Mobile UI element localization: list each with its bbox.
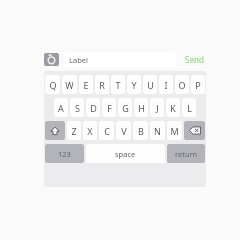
staticText: V — [121, 125, 127, 137]
staticText: W — [65, 79, 74, 91]
staticText: Q — [49, 79, 57, 91]
button[interactable]: Send — [182, 52, 206, 67]
staticText: 123 — [58, 149, 71, 159]
staticText: J — [156, 102, 159, 114]
button[interactable]: B — [133, 121, 148, 140]
button[interactable]: J — [150, 98, 164, 117]
button[interactable]: Label — [64, 52, 176, 67]
staticText: G — [122, 102, 129, 114]
button[interactable]: Q — [45, 75, 60, 94]
button[interactable]: F — [102, 98, 116, 117]
button[interactable]: M — [167, 121, 182, 140]
button[interactable]: A — [54, 98, 68, 117]
staticText: F — [107, 102, 112, 114]
button[interactable]: L — [182, 98, 196, 117]
staticText: N — [154, 125, 161, 137]
staticText: T — [115, 79, 121, 91]
button[interactable]: K — [166, 98, 180, 117]
button[interactable]: R — [95, 75, 109, 94]
button[interactable]: space — [86, 144, 165, 163]
staticText: Y — [131, 79, 137, 91]
button[interactable]: Backspace — [184, 121, 205, 140]
button[interactable]: N — [150, 121, 165, 140]
staticText: D — [90, 102, 97, 114]
button[interactable]: Shift — [45, 121, 65, 140]
button[interactable]: T — [111, 75, 125, 94]
button[interactable]: X — [83, 121, 97, 140]
button[interactable]: P — [191, 75, 205, 94]
button[interactable]: Y — [127, 75, 141, 94]
staticText: R — [99, 79, 105, 91]
staticText: B — [138, 125, 144, 137]
button[interactable]: 123 — [45, 144, 84, 163]
staticText: K — [170, 102, 176, 114]
staticText: X — [87, 125, 93, 137]
button[interactable]: E — [79, 75, 93, 94]
staticText: space — [115, 149, 136, 159]
staticText: A — [58, 102, 64, 114]
staticText: S — [75, 102, 80, 114]
button[interactable]: V — [116, 121, 131, 140]
button[interactable]: I — [159, 75, 173, 94]
button[interactable]: G — [118, 98, 132, 117]
button[interactable]: U — [143, 75, 157, 94]
staticText: Z — [71, 125, 77, 137]
button[interactable]: C — [99, 121, 114, 140]
button[interactable]: Camera — [44, 53, 59, 66]
staticText: P — [195, 79, 201, 91]
staticText: H — [138, 102, 145, 114]
button[interactable]: D — [86, 98, 100, 117]
staticText: Send — [185, 54, 204, 65]
staticText: Label — [69, 55, 88, 65]
staticText: C — [104, 125, 110, 137]
button[interactable]: H — [134, 98, 148, 117]
staticText: U — [147, 79, 154, 91]
button[interactable]: return — [167, 144, 205, 163]
button[interactable]: Z — [67, 121, 81, 140]
staticText: L — [187, 102, 192, 114]
staticText: I — [164, 79, 168, 91]
staticText: E — [83, 79, 89, 91]
button[interactable]: W — [62, 75, 77, 94]
staticText: O — [178, 79, 186, 91]
button[interactable]: O — [175, 75, 189, 94]
staticText: return — [175, 149, 198, 159]
staticText: M — [170, 125, 179, 137]
button[interactable]: S — [70, 98, 84, 117]
